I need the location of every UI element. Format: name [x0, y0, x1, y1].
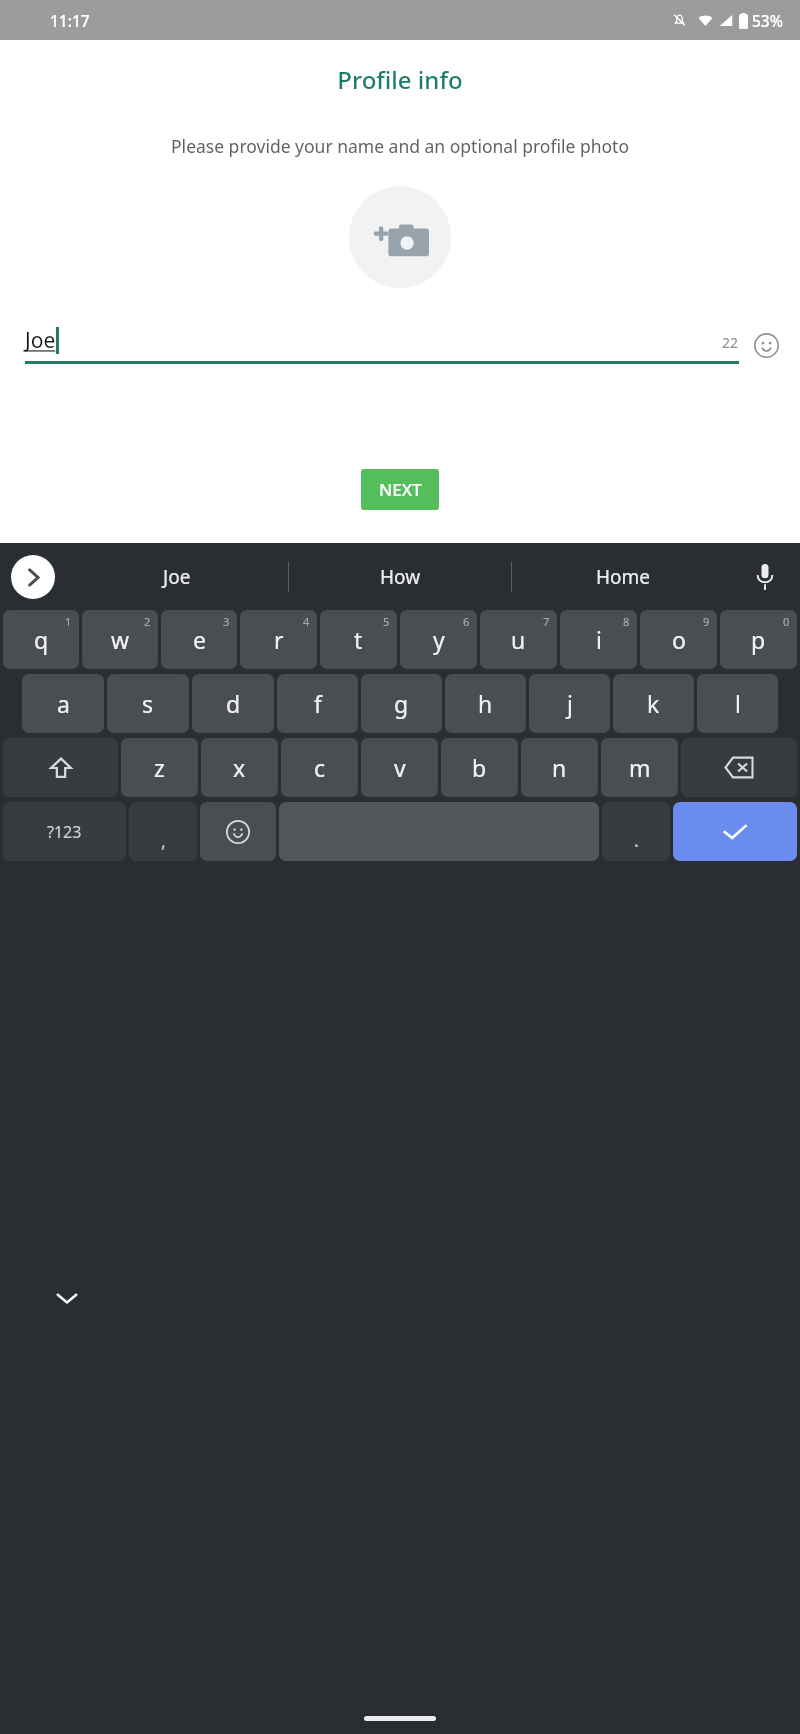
staticText: z [154, 752, 165, 783]
staticText: . [634, 828, 639, 853]
staticText: o [672, 624, 686, 655]
staticText: e [193, 624, 206, 655]
staticText: Joe [25, 326, 56, 355]
button[interactable]: , [129, 802, 197, 861]
staticText: f [314, 688, 322, 719]
button[interactable]: Home [512, 543, 734, 610]
staticText: Profile info [337, 63, 463, 96]
staticText: Joe [163, 564, 191, 590]
staticText: u [511, 624, 526, 655]
staticText: l [735, 688, 741, 719]
button[interactable]: How [289, 543, 511, 610]
button[interactable]: g [361, 674, 442, 733]
staticText: c [314, 752, 326, 783]
button[interactable]: Hide keyboard [50, 1281, 84, 1315]
button[interactable]: Backspace [681, 738, 797, 797]
button[interactable]: m [601, 738, 678, 797]
staticText: How [380, 564, 421, 590]
button[interactable]: w [82, 610, 158, 669]
staticText: w [111, 624, 130, 655]
button[interactable]: Emoji keyboard [200, 802, 276, 861]
staticText: ?123 [47, 821, 82, 843]
staticText: m [629, 752, 651, 783]
button[interactable]: More suggestions [11, 555, 55, 599]
button[interactable]: x [201, 738, 278, 797]
button[interactable]: c [281, 738, 358, 797]
button[interactable]: z [121, 738, 198, 797]
staticText: , [161, 829, 166, 854]
button[interactable]: v [361, 738, 438, 797]
button[interactable]: Joe [66, 543, 288, 610]
button[interactable]: ?123 [3, 802, 126, 861]
staticText: y [433, 624, 445, 655]
button[interactable]: h [445, 674, 526, 733]
staticText: x [233, 752, 246, 783]
button[interactable]: j [529, 674, 610, 733]
staticText: 2 [144, 614, 151, 629]
button[interactable]: Add profile photo [349, 186, 451, 288]
button[interactable]: Enter [673, 802, 797, 861]
staticText: 0 [783, 614, 790, 629]
staticText: 1 [65, 614, 72, 629]
button[interactable]: u [480, 610, 557, 669]
button[interactable]: o [640, 610, 717, 669]
button[interactable]: NEXT [361, 469, 439, 510]
staticText: 11:17 [50, 10, 90, 31]
staticText: 53% [752, 10, 783, 31]
button[interactable]: a [22, 674, 104, 733]
staticText: h [478, 688, 493, 719]
button[interactable]: q [3, 610, 79, 669]
staticText: 3 [223, 614, 230, 629]
staticText: v [394, 752, 406, 783]
staticText: d [226, 688, 241, 719]
staticText: q [34, 624, 49, 655]
staticText: 5 [383, 614, 390, 629]
button[interactable]: b [441, 738, 518, 797]
button[interactable]: p [720, 610, 797, 669]
staticText: j [567, 688, 573, 719]
staticText: 4 [303, 614, 310, 629]
staticText: r [274, 624, 284, 655]
staticText: a [57, 688, 70, 719]
button[interactable]: n [521, 738, 598, 797]
button[interactable]: t [320, 610, 397, 669]
button[interactable]: d [192, 674, 274, 733]
staticText: k [647, 688, 660, 719]
button[interactable]: l [697, 674, 778, 733]
staticText: Please provide your name and an optional… [171, 134, 629, 158]
button[interactable]: f [277, 674, 358, 733]
staticText: NEXT [379, 478, 422, 501]
staticText: 22 [722, 333, 739, 352]
staticText: Home [596, 564, 651, 590]
staticText: b [472, 752, 487, 783]
button[interactable]: i [560, 610, 637, 669]
button[interactable]: . [602, 802, 670, 861]
staticText: t [354, 624, 363, 655]
staticText: i [596, 624, 602, 655]
button[interactable]: Shift [3, 738, 118, 797]
staticText: 6 [463, 614, 470, 629]
button[interactable]: k [613, 674, 694, 733]
staticText: 9 [703, 614, 710, 629]
staticText: s [142, 688, 154, 719]
button[interactable]: Voice input [746, 558, 784, 596]
button[interactable]: Emoji [753, 332, 779, 358]
staticText: g [394, 688, 409, 719]
button[interactable]: s [107, 674, 189, 733]
staticText: 8 [623, 614, 630, 629]
staticText: 7 [543, 614, 550, 629]
button[interactable]: y [400, 610, 477, 669]
button[interactable]: e [161, 610, 237, 669]
staticText: n [552, 752, 567, 783]
staticText: p [751, 624, 766, 655]
button[interactable]: r [240, 610, 317, 669]
